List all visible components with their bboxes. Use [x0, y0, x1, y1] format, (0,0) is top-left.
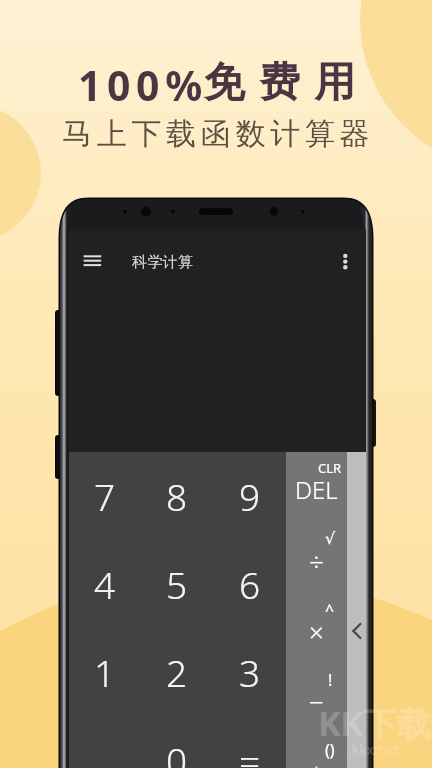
- button[interactable]: !: [286, 663, 347, 733]
- staticText: ^: [325, 599, 335, 619]
- button[interactable]: 2: [141, 628, 213, 716]
- button[interactable]: CLR: [286, 452, 347, 522]
- staticText: =: [239, 735, 261, 768]
- button[interactable]: 9: [214, 452, 286, 540]
- button[interactable]: Power: [369, 399, 376, 447]
- staticText: ÷: [309, 543, 324, 573]
- staticText: ×: [309, 614, 324, 644]
- button[interactable]: (): [286, 733, 347, 768]
- staticText: 免费用: [204, 57, 370, 109]
- staticText: 0: [166, 735, 188, 768]
- staticText: KK下载: [318, 700, 432, 746]
- staticText: DEL: [295, 473, 338, 503]
- staticText: 7: [94, 471, 116, 521]
- staticText: .kkx.net: [348, 740, 400, 759]
- staticText: −: [309, 684, 324, 714]
- button[interactable]: Assistant: [55, 435, 61, 479]
- staticText: 100%: [78, 57, 208, 113]
- staticText: !: [328, 669, 333, 689]
- button[interactable]: 3: [214, 628, 286, 716]
- staticText: 5: [166, 559, 188, 609]
- staticText: CLR: [318, 459, 342, 477]
- staticText: 9: [239, 471, 261, 521]
- staticText: 马上下载函数计算器: [62, 115, 375, 153]
- button[interactable]: 7: [69, 452, 141, 540]
- staticText: 3: [239, 647, 261, 697]
- button[interactable]: 8: [141, 452, 213, 540]
- staticText: 6: [239, 559, 261, 609]
- button[interactable]: √: [286, 522, 347, 592]
- button[interactable]: ^: [286, 593, 347, 663]
- staticText: 8: [166, 471, 188, 521]
- button[interactable]: More options: [333, 245, 358, 270]
- staticText: 2: [166, 647, 188, 697]
- staticText: 4: [94, 559, 116, 609]
- staticText: 1: [94, 647, 116, 697]
- button[interactable]: =: [214, 716, 286, 768]
- staticText: +: [309, 754, 324, 768]
- staticText: √: [325, 529, 336, 548]
- button[interactable]: 1: [69, 628, 141, 716]
- staticText: 科学计算: [132, 253, 194, 272]
- button[interactable]: Volume: [55, 310, 61, 396]
- button[interactable]: 0: [141, 716, 213, 768]
- staticText: (): [325, 739, 335, 759]
- button[interactable]: 6: [214, 540, 286, 628]
- button[interactable]: 4: [69, 540, 141, 628]
- button[interactable]: 5: [141, 540, 213, 628]
- button[interactable]: Navigation menu: [75, 244, 107, 276]
- button[interactable]: Expand panel: [347, 452, 366, 768]
